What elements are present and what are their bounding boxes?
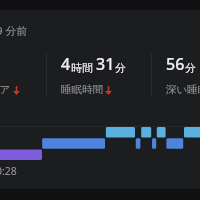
- other: Trending down: [105, 86, 112, 95]
- staticText: 睡眠時間: [61, 83, 103, 96]
- staticText: 4: [61, 53, 71, 75]
- staticText: 0:28: [0, 164, 17, 178]
- button[interactable]: 56: [166, 53, 200, 97]
- staticText: 分: [115, 61, 126, 75]
- staticText: 56: [166, 53, 185, 75]
- staticText: 時間: [71, 61, 93, 75]
- button[interactable]: 19 分前: [0, 23, 28, 38]
- button[interactable]: 82: [0, 53, 57, 97]
- staticText: 31: [96, 53, 115, 75]
- staticText: 深い睡眠: [166, 83, 200, 96]
- other: Trending down: [13, 86, 20, 95]
- staticText: 睡眠スコア: [0, 83, 11, 96]
- staticText: 19 分前: [0, 23, 28, 38]
- staticText: 分: [185, 61, 196, 75]
- button[interactable]: 4: [61, 53, 161, 97]
